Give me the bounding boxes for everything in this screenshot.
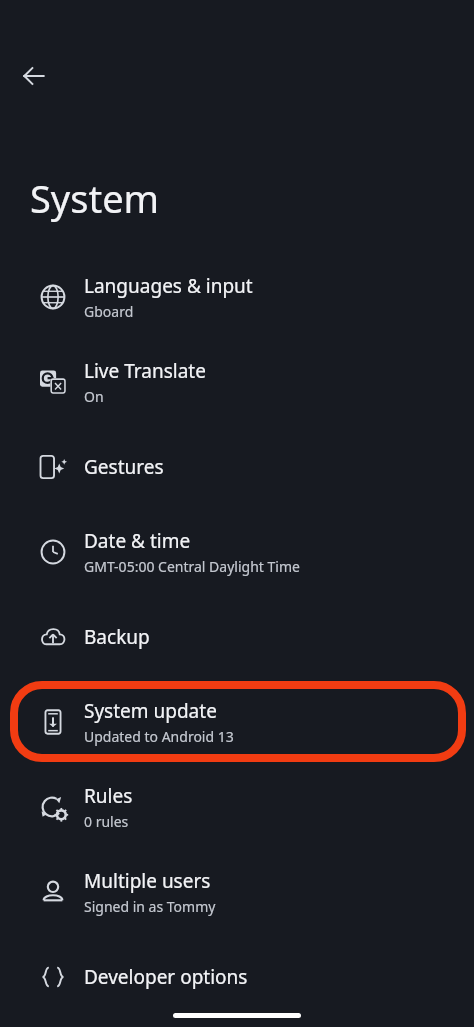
staticText: On (84, 387, 104, 406)
staticText: 0 rules (84, 812, 129, 831)
staticText: GMT-05:00 Central Daylight Time (84, 557, 300, 576)
button[interactable]: Gestures (0, 424, 474, 509)
staticText: Multiple users (84, 868, 211, 894)
button[interactable]: Date & time (0, 509, 474, 594)
button[interactable]: System update (0, 679, 474, 764)
button[interactable]: Rules (0, 764, 474, 849)
staticText: Gboard (84, 302, 134, 321)
button[interactable]: Multiple users (0, 849, 474, 934)
staticText: Date & time (84, 528, 191, 554)
staticText: Live Translate (84, 358, 206, 384)
button[interactable]: Backup (0, 594, 474, 679)
staticText: Developer options (84, 964, 248, 990)
staticText: System (30, 172, 160, 224)
button[interactable]: Languages & input (0, 254, 474, 339)
button[interactable]: Developer options (0, 934, 474, 1019)
staticText: Updated to Android 13 (84, 727, 234, 746)
button[interactable]: Back (12, 54, 56, 98)
staticText: Rules (84, 783, 133, 809)
button[interactable]: Live Translate (0, 339, 474, 424)
staticText: Languages & input (84, 273, 253, 299)
staticText: Gestures (84, 454, 164, 480)
staticText: Backup (84, 624, 150, 650)
staticText: Signed in as Tommy (84, 897, 216, 916)
staticText: System update (84, 698, 217, 724)
